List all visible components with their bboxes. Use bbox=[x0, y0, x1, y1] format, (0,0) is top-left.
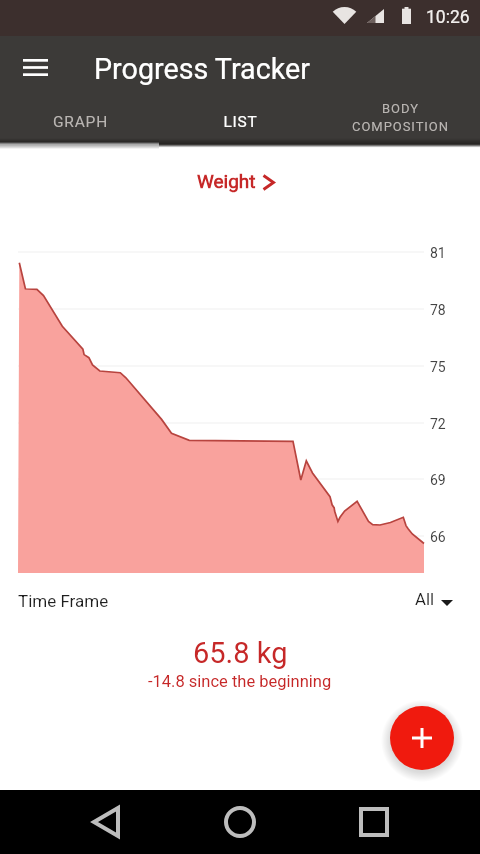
staticText: 66 bbox=[430, 529, 446, 545]
button[interactable]: GRAPH bbox=[0, 98, 160, 146]
staticText: GRAPH bbox=[53, 113, 108, 131]
staticText: 10:26 bbox=[426, 7, 470, 28]
staticText: LIST bbox=[223, 113, 258, 131]
staticText: 65.8 kg bbox=[193, 636, 288, 670]
button[interactable]: Add measurement bbox=[390, 706, 454, 770]
button[interactable]: Home bbox=[212, 794, 268, 850]
staticText: 78 bbox=[430, 302, 446, 318]
staticText: -14.8 since the beginning bbox=[148, 672, 332, 691]
staticText: All bbox=[415, 589, 435, 609]
staticText: BODY COMPOSITION bbox=[352, 101, 449, 134]
button[interactable]: All bbox=[415, 589, 455, 609]
button[interactable]: Weight bbox=[197, 170, 275, 192]
staticText: 69 bbox=[430, 472, 446, 488]
button[interactable]: Recent apps bbox=[346, 794, 402, 850]
staticText: Progress Tracker bbox=[94, 52, 310, 86]
staticText: 75 bbox=[430, 359, 446, 375]
button[interactable]: BODY COMPOSITION bbox=[320, 98, 480, 146]
staticText: 81 bbox=[430, 245, 446, 261]
staticText: 72 bbox=[430, 416, 446, 432]
button[interactable]: Open navigation drawer bbox=[13, 45, 57, 89]
staticText: Weight bbox=[197, 170, 256, 192]
button[interactable]: Back bbox=[78, 794, 134, 850]
button[interactable]: LIST bbox=[160, 98, 320, 146]
staticText: Time Frame bbox=[18, 591, 109, 611]
